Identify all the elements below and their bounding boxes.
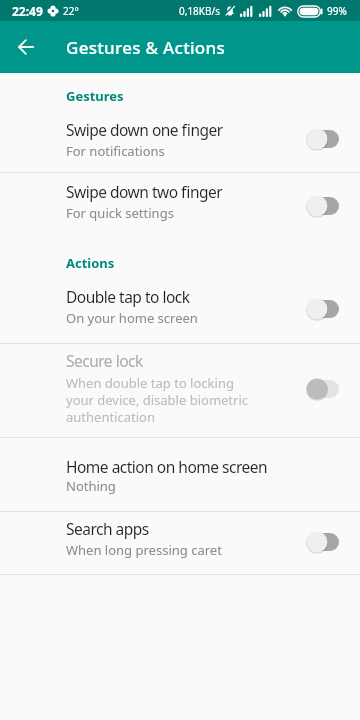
staticText: 22° bbox=[63, 4, 79, 18]
staticText: Gestures bbox=[66, 87, 124, 105]
staticText: 22:49 bbox=[12, 3, 43, 19]
staticText: Secure lock bbox=[66, 350, 143, 371]
staticText: Actions bbox=[66, 254, 115, 272]
button[interactable]: Double tap to lock bbox=[0, 275, 360, 343]
button[interactable]: Secure lock bbox=[0, 344, 360, 437]
staticText: Nothing bbox=[66, 477, 116, 495]
staticText: 0,18KB/s bbox=[179, 4, 221, 18]
staticText: Search apps bbox=[66, 518, 149, 539]
staticText: When double tap to locking your device, … bbox=[66, 374, 249, 426]
staticText: When long pressing caret bbox=[66, 541, 222, 559]
staticText: Gestures & Actions bbox=[66, 36, 226, 59]
button[interactable] bbox=[8, 29, 44, 65]
staticText: For quick settings bbox=[66, 204, 174, 222]
staticText: 99% bbox=[327, 4, 347, 18]
staticText: For notifications bbox=[66, 142, 165, 160]
button[interactable]: Home action on home screen bbox=[0, 440, 360, 511]
staticText: Swipe down one finger bbox=[66, 119, 223, 140]
staticText: Home action on home screen bbox=[66, 456, 268, 477]
staticText: On your home screen bbox=[66, 309, 198, 327]
button[interactable]: Search apps bbox=[0, 510, 360, 574]
button[interactable]: Swipe down two finger bbox=[0, 173, 360, 237]
staticText: Double tap to lock bbox=[66, 286, 190, 307]
button[interactable]: Swipe down one finger bbox=[0, 112, 360, 172]
staticText: Swipe down two finger bbox=[66, 181, 223, 202]
